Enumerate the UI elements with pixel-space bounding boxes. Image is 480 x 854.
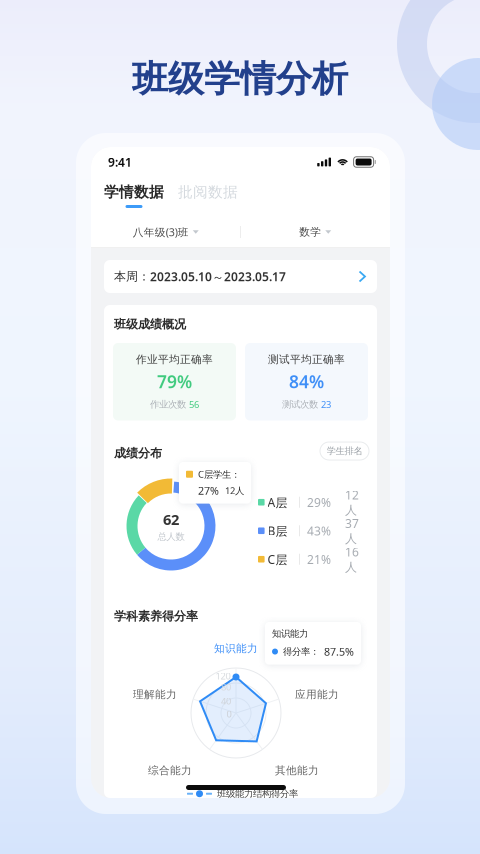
button[interactable]: 本周： <box>104 260 377 293</box>
staticText: 79% <box>157 370 192 393</box>
staticText: 学生排名 <box>326 445 362 457</box>
staticText: C层学生： <box>198 468 240 480</box>
staticText: 16人 <box>345 544 359 575</box>
staticText: 学科素养得分率 <box>114 609 198 624</box>
staticText: 120 <box>215 670 230 682</box>
staticText: 其他能力 <box>275 764 319 777</box>
staticText: 班级成绩概况 <box>114 317 186 332</box>
staticText: 80 <box>221 681 231 693</box>
staticText: 87.5% <box>324 644 354 659</box>
staticText: 37人 <box>345 515 359 546</box>
staticText: 作业次数 <box>150 399 186 410</box>
staticText: 批阅数据 <box>178 183 238 201</box>
staticText: 12人 <box>225 484 244 497</box>
staticText: 29% <box>307 494 331 510</box>
staticText: 班级能力结构得分率 <box>217 788 298 799</box>
staticText: 62 <box>163 509 179 529</box>
staticText: 84% <box>289 370 324 393</box>
button[interactable]: 批阅数据 <box>178 183 238 208</box>
staticText: 0 <box>226 708 231 720</box>
staticText: 测试次数 <box>282 399 318 410</box>
staticText: 56 <box>189 398 199 410</box>
staticText: 成绩分布 <box>114 446 162 461</box>
staticText: 27% <box>198 483 219 498</box>
staticText: 测试平均正确率 <box>268 353 345 366</box>
staticText: 数学 <box>299 225 321 238</box>
button[interactable]: 数学 <box>240 217 390 247</box>
staticText: A层 <box>268 494 288 510</box>
staticText: 应用能力 <box>295 688 339 701</box>
button[interactable]: 学情数据 <box>104 183 164 208</box>
staticText: B层 <box>268 523 288 539</box>
button[interactable]: 八年级(3)班 <box>91 217 240 247</box>
staticText: 知识能力 <box>272 628 308 639</box>
button[interactable]: 学生排名 <box>320 442 369 460</box>
staticText: 得分率： <box>283 646 319 657</box>
staticText: 作业平均正确率 <box>136 353 213 366</box>
staticText: 2023.05.10～2023.05.17 <box>150 268 286 284</box>
staticText: 班级学情分析 <box>132 57 348 101</box>
staticText: 9:41 <box>108 154 132 170</box>
staticText: 21% <box>307 551 331 567</box>
staticText: 12人 <box>345 487 359 518</box>
staticText: C层 <box>268 551 288 567</box>
staticText: 知识能力 <box>214 642 258 655</box>
staticText: 40 <box>221 695 231 707</box>
staticText: 本周： <box>114 269 150 284</box>
staticText: 综合能力 <box>148 764 192 777</box>
staticText: 43% <box>307 523 331 539</box>
staticText: 八年级(3)班 <box>133 225 189 239</box>
staticText: 学情数据 <box>104 183 164 201</box>
staticText: 总人数 <box>157 531 184 542</box>
staticText: 理解能力 <box>133 688 177 701</box>
staticText: 23 <box>321 398 331 410</box>
